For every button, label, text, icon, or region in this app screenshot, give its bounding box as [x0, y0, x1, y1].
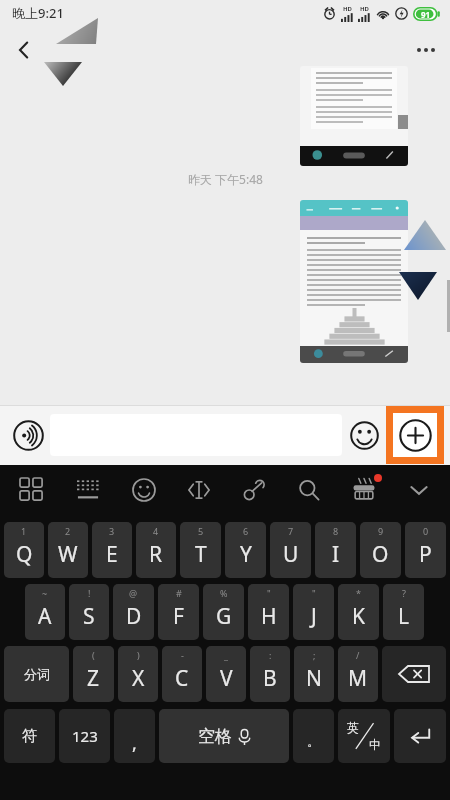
staticText: ,	[132, 731, 137, 756]
staticText: K	[352, 602, 365, 631]
staticText: 中	[369, 737, 381, 752]
button[interactable]: _	[206, 646, 246, 702]
staticText: *	[356, 587, 361, 599]
staticText: ;	[313, 649, 316, 661]
staticText: W	[58, 540, 78, 569]
button[interactable]: 3	[92, 522, 132, 578]
staticText: /	[356, 649, 360, 661]
button[interactable]: Back	[0, 26, 48, 74]
button[interactable]: "	[248, 584, 289, 640]
staticText: 晚上9:21	[12, 4, 64, 22]
button[interactable]: Backspace	[382, 646, 446, 702]
staticText: #	[176, 587, 182, 599]
button[interactable]: Image message	[300, 200, 408, 363]
button[interactable]: Clipboard	[226, 465, 281, 515]
staticText: ~	[42, 587, 48, 599]
staticText: B	[263, 664, 277, 693]
button[interactable]: 123	[59, 709, 110, 763]
button[interactable]: Keyboard layout	[60, 465, 116, 515]
button[interactable]: !	[69, 584, 109, 640]
staticText: HD	[343, 5, 352, 13]
button[interactable]: 6	[225, 522, 266, 578]
button[interactable]: Image message	[300, 66, 408, 166]
staticText: -	[181, 649, 184, 661]
staticText: Z	[87, 664, 100, 693]
staticText: 5	[198, 525, 204, 537]
staticText: 9	[378, 525, 384, 537]
button[interactable]: Switch language	[338, 709, 390, 763]
staticText: E	[106, 540, 118, 569]
button[interactable]: 符	[4, 709, 55, 763]
staticText: P	[419, 540, 432, 569]
button[interactable]: Search	[281, 465, 336, 515]
button[interactable]: 4	[136, 522, 176, 578]
button[interactable]: Emoji	[116, 465, 171, 515]
staticText: R	[149, 540, 163, 569]
button[interactable]: /	[338, 646, 378, 702]
staticText: 8	[333, 525, 339, 537]
button[interactable]: 0	[405, 522, 446, 578]
button[interactable]: ~	[25, 584, 65, 640]
button[interactable]: *	[338, 584, 379, 640]
staticText: V	[220, 664, 233, 693]
button[interactable]: ?	[383, 584, 424, 640]
staticText: A	[38, 602, 52, 631]
button[interactable]: Voice input	[6, 413, 50, 457]
staticText: 6	[243, 525, 249, 537]
staticText: HD	[360, 5, 369, 13]
staticText: 91	[421, 9, 431, 20]
button[interactable]: Emoji	[342, 413, 386, 457]
staticText: H	[261, 602, 277, 631]
staticText: L	[398, 602, 410, 631]
staticText: J	[311, 602, 317, 631]
staticText: T	[195, 540, 207, 569]
button[interactable]: "	[293, 584, 334, 640]
staticText: O	[372, 540, 389, 569]
button[interactable]: (	[73, 646, 114, 702]
staticText: 0	[423, 525, 429, 537]
button[interactable]: )	[118, 646, 158, 702]
staticText: "	[312, 587, 316, 599]
staticText: 7	[288, 525, 294, 537]
staticText: 1	[21, 525, 27, 537]
staticText: @	[129, 587, 138, 599]
staticText: "	[267, 587, 271, 599]
staticText: X	[132, 664, 145, 693]
staticText: S	[83, 602, 95, 631]
staticText: F	[173, 602, 184, 631]
staticText: !	[88, 587, 91, 599]
button[interactable]: Hide keyboard	[391, 465, 446, 515]
staticText: N	[306, 664, 322, 693]
button[interactable]: More options	[402, 26, 450, 74]
button[interactable]: 2	[48, 522, 88, 578]
staticText: I	[332, 540, 340, 569]
button[interactable]: 9	[360, 522, 401, 578]
button[interactable]: 分词	[4, 646, 69, 702]
button[interactable]: #	[158, 584, 199, 640]
button[interactable]: Skin	[336, 465, 391, 515]
button[interactable]: 7	[270, 522, 311, 578]
staticText: (	[92, 649, 95, 661]
button[interactable]: %	[203, 584, 244, 640]
staticText: :	[269, 649, 272, 661]
button[interactable]: Enter	[394, 709, 446, 763]
button[interactable]: More functions	[393, 413, 437, 457]
button[interactable]: 空格	[159, 709, 289, 763]
staticText: Q	[16, 540, 33, 569]
button[interactable]: 5	[180, 522, 221, 578]
button[interactable]: 8	[315, 522, 356, 578]
staticText: 空格	[198, 726, 232, 747]
button[interactable]: ,	[114, 709, 155, 763]
staticText: 分词	[24, 666, 50, 682]
button[interactable]: 。	[293, 709, 334, 763]
button[interactable]: @	[113, 584, 154, 640]
button[interactable]: Text cursor	[171, 465, 226, 515]
button[interactable]: ;	[294, 646, 334, 702]
button[interactable]: -	[162, 646, 202, 702]
button[interactable]: 1	[4, 522, 44, 578]
staticText: M	[348, 664, 368, 693]
staticText: Y	[240, 540, 252, 569]
button[interactable]: :	[250, 646, 290, 702]
button[interactable]: Keyboard modes	[4, 465, 60, 515]
